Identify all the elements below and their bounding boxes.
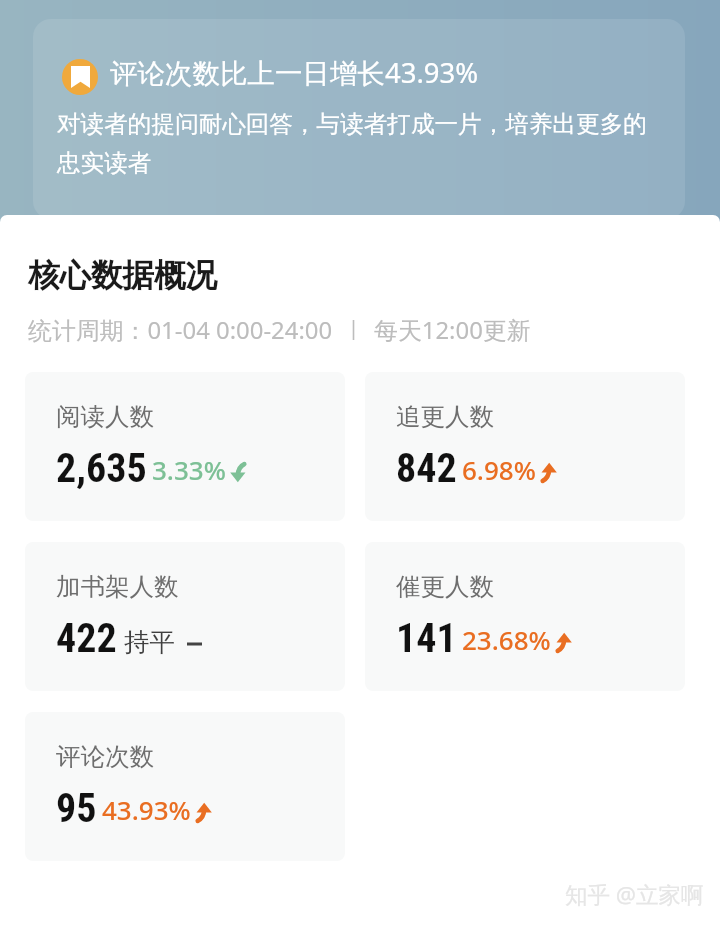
staticText: 842: [396, 445, 457, 492]
staticText: 核心数据概况: [28, 256, 217, 296]
staticText: 评论次数: [56, 741, 154, 772]
staticText: 评论次数比上一日增长43.93%: [110, 54, 479, 92]
staticText: 追更人数: [396, 401, 494, 432]
staticText: 每天12:00更新: [374, 313, 531, 346]
button[interactable]: 加书架人数: [25, 542, 345, 691]
staticText: 141: [396, 615, 457, 662]
staticText: 2,635: [56, 445, 147, 492]
staticText: 加书架人数: [56, 571, 179, 602]
staticText: 43.93%: [102, 792, 191, 827]
button[interactable]: 评论次数比上一日增长43.93%: [33, 19, 685, 219]
staticText: 422: [56, 615, 117, 662]
button[interactable]: 催更人数: [365, 542, 685, 691]
staticText: 6.98%: [462, 452, 536, 487]
staticText: 23.68%: [462, 622, 551, 657]
staticText: 统计周期：01-04 0:00-24:00: [28, 313, 333, 346]
staticText: 知乎 @立家啊: [565, 879, 704, 910]
button[interactable]: 评论次数: [25, 712, 345, 861]
staticText: 3.33%: [152, 452, 226, 487]
button[interactable]: 追更人数: [365, 372, 685, 521]
staticText: 持平: [124, 626, 175, 658]
staticText: 催更人数: [396, 571, 494, 602]
staticText: 95: [56, 785, 97, 832]
staticText: 对读者的提问耐心回答，与读者打成一片，培养出更多的忠实读者: [57, 109, 669, 178]
button[interactable]: 阅读人数: [25, 372, 345, 521]
staticText: 阅读人数: [56, 401, 154, 432]
